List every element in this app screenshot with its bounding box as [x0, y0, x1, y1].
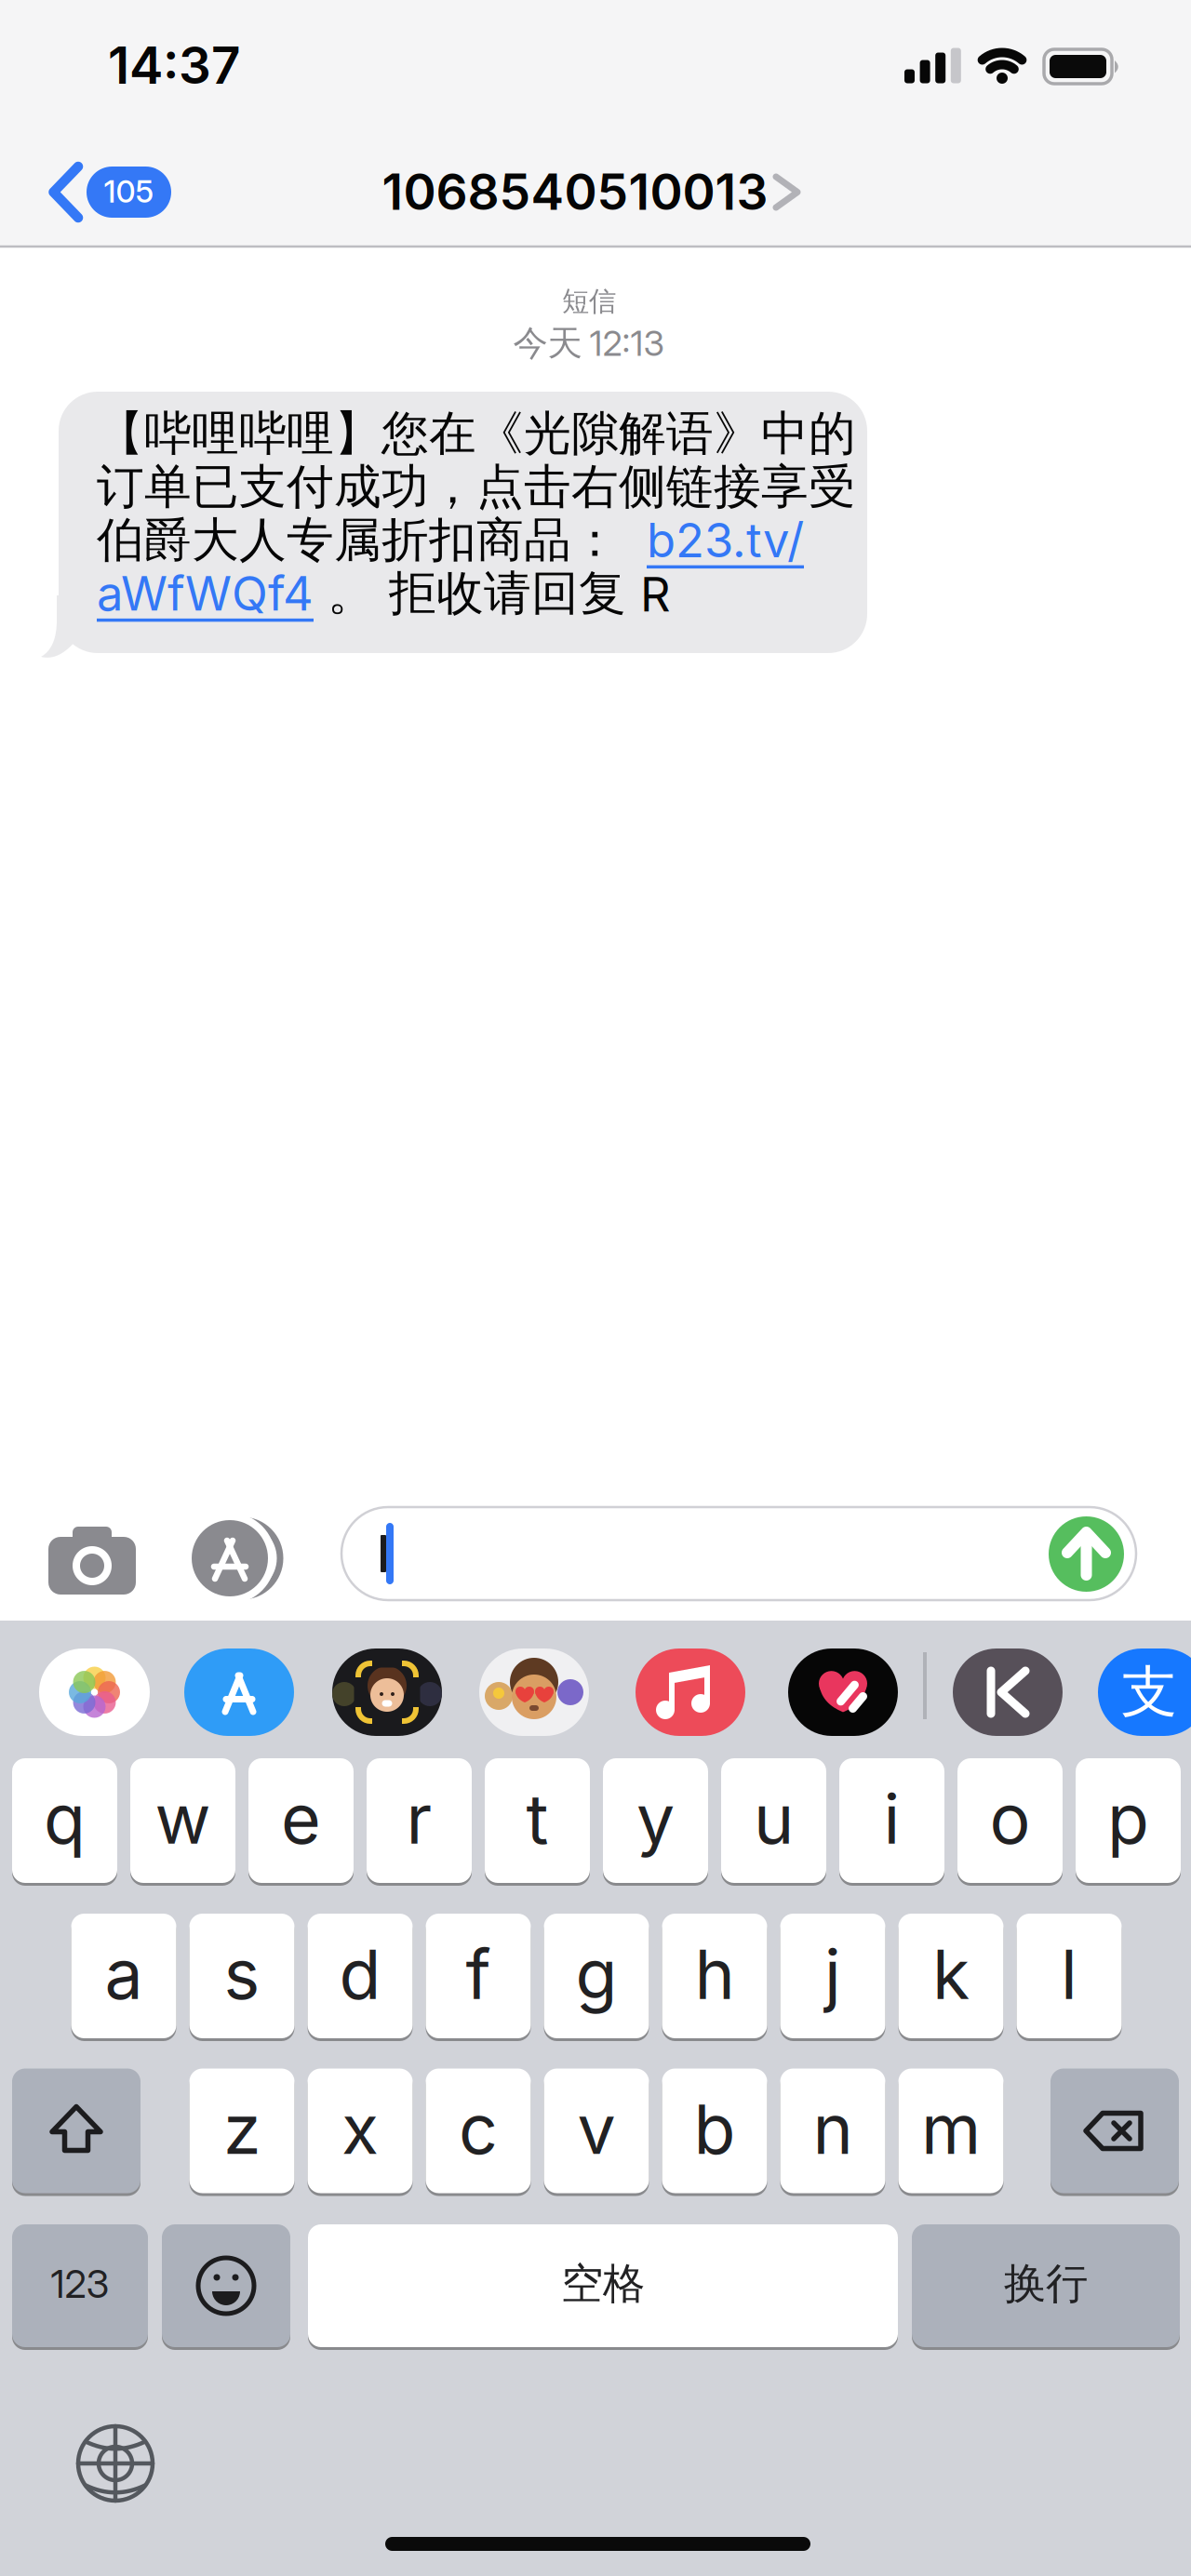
staticText: p: [1107, 1778, 1149, 1859]
button[interactable]: v: [544, 2069, 649, 2197]
button[interactable]: Conversation details: [394, 162, 803, 222]
staticText: 105: [104, 173, 154, 209]
staticText: j: [824, 1934, 841, 2014]
button[interactable]: K app: [953, 1648, 1063, 1736]
staticText: v: [577, 2089, 616, 2169]
button[interactable]: h: [662, 1914, 767, 2042]
button[interactable]: Shift: [12, 2069, 141, 2197]
button[interactable]: e: [248, 1758, 354, 1887]
button[interactable]: b: [662, 2069, 767, 2197]
staticText: s: [224, 1934, 260, 2014]
staticText: 支: [1121, 1658, 1177, 1727]
staticText: b: [694, 2089, 736, 2169]
button[interactable]: Music: [636, 1648, 745, 1736]
staticText: d: [339, 1934, 381, 2014]
staticText: x: [341, 2089, 379, 2169]
button[interactable]: Next keyboard: [69, 2417, 162, 2510]
button[interactable]: g: [544, 1914, 649, 2042]
button[interactable]: j: [780, 1914, 885, 2042]
staticText: 伯爵大人专属折扣商品：: [97, 511, 647, 569]
staticText: u: [754, 1778, 794, 1859]
button[interactable]: w: [130, 1758, 235, 1887]
button[interactable]: c: [426, 2069, 531, 2197]
button[interactable]: n: [780, 2069, 885, 2197]
button[interactable]: 换行: [912, 2224, 1180, 2351]
button[interactable]: Emoji: [162, 2224, 290, 2351]
staticText: 换行: [1004, 2258, 1088, 2310]
button[interactable]: k: [898, 1914, 1004, 2042]
staticText: e: [281, 1778, 321, 1859]
button[interactable]: o: [957, 1758, 1063, 1887]
staticText: r: [406, 1778, 432, 1859]
staticText: t: [526, 1778, 549, 1859]
button[interactable]: Camera: [41, 1521, 143, 1599]
button[interactable]: z: [189, 2069, 294, 2197]
staticText: 空格: [561, 2258, 645, 2310]
button[interactable]: Photos: [39, 1648, 150, 1736]
staticText: n: [813, 2089, 853, 2169]
staticText: 【哔哩哔哩】您在《光隙解语》中的: [97, 405, 856, 463]
button[interactable]: l: [1017, 1914, 1122, 2042]
button[interactable]: App Store: [184, 1648, 294, 1736]
button[interactable]: 123: [12, 2224, 148, 2351]
staticText: k: [932, 1934, 970, 2014]
button[interactable]: Back: [42, 162, 182, 222]
staticText: a: [105, 1934, 143, 2014]
staticText: z: [223, 2089, 261, 2169]
staticText: i: [883, 1778, 900, 1859]
staticText: 12:13: [589, 323, 665, 364]
staticText: l: [1061, 1934, 1077, 2014]
button[interactable]: Alipay: [1098, 1648, 1191, 1736]
staticText: f: [466, 1934, 491, 2014]
button[interactable]: Memoji: [332, 1648, 442, 1736]
button[interactable]: s: [189, 1914, 294, 2042]
staticText: q: [44, 1778, 86, 1859]
button[interactable]: 空格: [308, 2224, 898, 2351]
button[interactable]: r: [367, 1758, 472, 1887]
button[interactable]: m: [898, 2069, 1004, 2197]
button[interactable]: d: [308, 1914, 413, 2042]
staticText: g: [575, 1934, 617, 2014]
button[interactable]: u: [721, 1758, 826, 1887]
button[interactable]: i: [839, 1758, 944, 1887]
button[interactable]: q: [12, 1758, 117, 1887]
button[interactable]: Delete: [1050, 2069, 1179, 2197]
staticText: 今天: [513, 322, 582, 365]
button[interactable]: iMessage apps: [184, 1515, 288, 1602]
staticText: 1068540510013: [382, 162, 768, 221]
staticText: c: [459, 2089, 498, 2169]
staticText: 123: [51, 2261, 109, 2307]
button[interactable]: p: [1076, 1758, 1181, 1887]
button[interactable]: a: [71, 1914, 176, 2042]
staticText: o: [990, 1778, 1030, 1859]
staticText: h: [695, 1934, 735, 2014]
staticText: 。 拒收请回复 R: [314, 564, 671, 622]
staticText: 订单已支付成功，点击右侧链接享受: [97, 458, 856, 516]
button[interactable]: t: [485, 1758, 590, 1887]
button[interactable]: Text message field: [341, 1507, 1136, 1600]
staticText: m: [921, 2089, 981, 2169]
button[interactable]: Heart app: [788, 1648, 898, 1736]
staticText: aWfWQf4: [97, 566, 314, 621]
staticText: w: [155, 1778, 211, 1859]
staticText: b23.tv/: [647, 512, 804, 568]
button[interactable]: x: [308, 2069, 413, 2197]
button[interactable]: y: [603, 1758, 708, 1887]
button[interactable]: Send: [1046, 1514, 1126, 1594]
staticText: y: [636, 1778, 675, 1859]
button[interactable]: Memoji stickers: [479, 1648, 589, 1736]
button[interactable]: f: [426, 1914, 531, 2042]
staticText: 短信: [562, 285, 616, 318]
staticText: 14:37: [108, 35, 240, 95]
